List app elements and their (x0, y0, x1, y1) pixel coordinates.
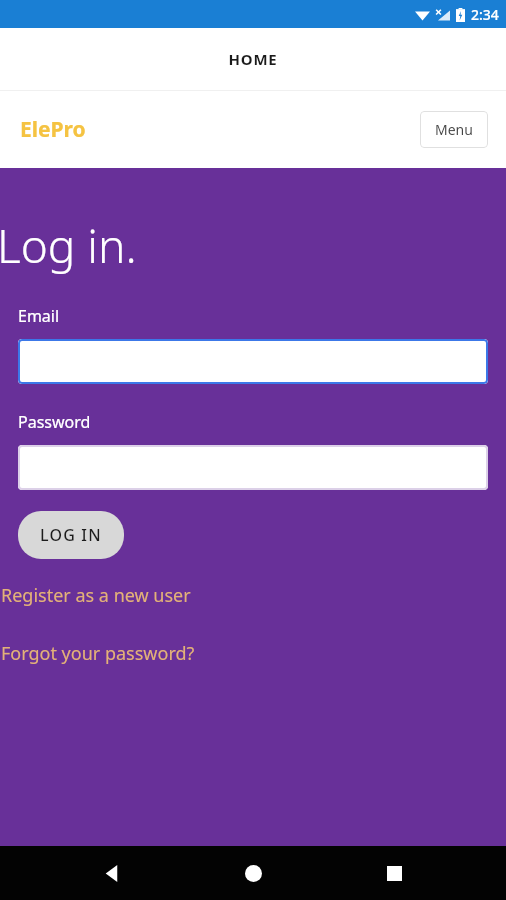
staticText: Password (18, 411, 91, 433)
button[interactable]: Forgot your password? (0, 639, 506, 668)
staticText: Register as a new user (1, 583, 191, 608)
button[interactable] (18, 445, 488, 490)
staticText: LOG IN (40, 524, 102, 546)
button[interactable]: Recent apps (365, 846, 423, 900)
button[interactable]: Register as a new user (0, 581, 506, 610)
button[interactable]: Home (224, 846, 282, 900)
staticText: Log in. (0, 214, 137, 277)
staticText: Email (18, 305, 60, 327)
staticText: HOME (228, 49, 278, 69)
button[interactable]: Back (83, 846, 141, 900)
staticText: 2:34 (471, 5, 499, 24)
staticText: Menu (435, 120, 473, 139)
button[interactable] (18, 339, 488, 384)
button[interactable]: LOG IN (18, 511, 124, 559)
button[interactable]: ElePro (20, 115, 86, 144)
button[interactable]: Menu (420, 111, 488, 148)
staticText: Forgot your password? (1, 641, 195, 666)
